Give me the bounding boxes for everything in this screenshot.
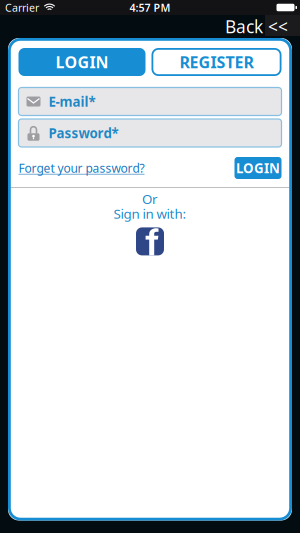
staticText: Back << bbox=[225, 15, 288, 38]
staticText: Sign in with: bbox=[113, 205, 186, 222]
staticText: 4:57 PM bbox=[129, 0, 170, 15]
button[interactable]: REGISTER bbox=[151, 48, 281, 76]
button[interactable]: Forget your password? bbox=[18, 160, 144, 176]
staticText: Carrier bbox=[5, 0, 39, 15]
staticText: LOGIN bbox=[55, 51, 108, 73]
button[interactable]: LOGIN bbox=[18, 48, 145, 76]
staticText: Forget your password? bbox=[18, 160, 144, 176]
staticText: Or bbox=[142, 190, 158, 208]
button[interactable]: Sign in with Facebook bbox=[136, 227, 164, 255]
button[interactable]: LOGIN bbox=[234, 157, 281, 179]
staticText: Password* bbox=[48, 124, 118, 142]
button[interactable]: Back << bbox=[225, 15, 288, 38]
staticText: REGISTER bbox=[179, 51, 253, 73]
staticText: E-mail* bbox=[48, 93, 95, 110]
staticText: LOGIN bbox=[236, 159, 280, 177]
